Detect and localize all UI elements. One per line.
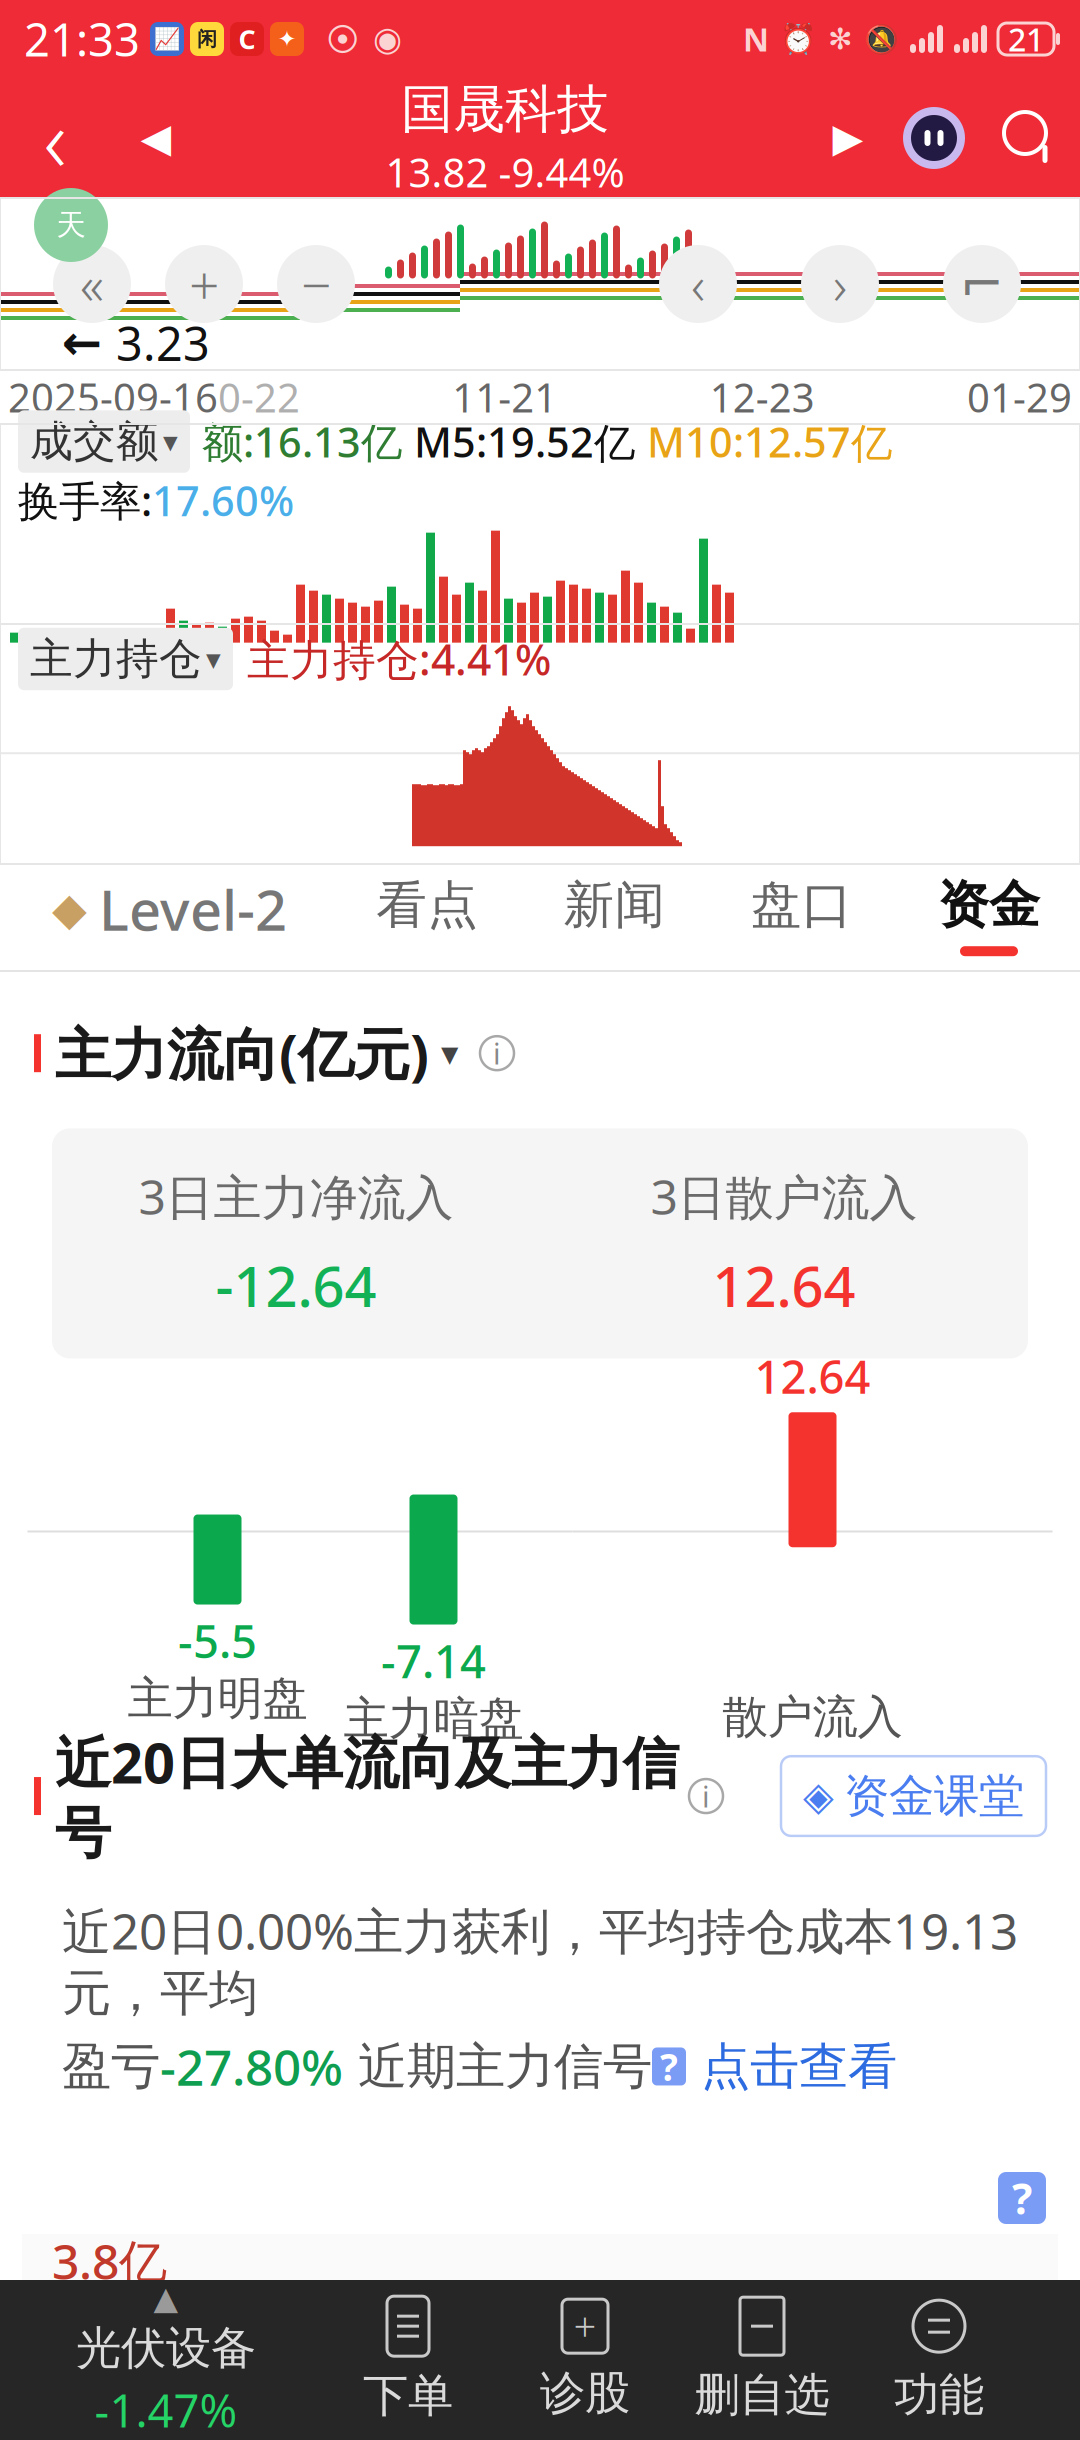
staticText: i [493,1034,501,1073]
staticText: − [301,249,331,319]
staticText: 新闻 [563,874,665,936]
button[interactable]: 说明 [679,1769,733,1823]
staticText: + [189,249,219,319]
staticText: -12.64 [215,1248,376,1322]
staticText: ? [660,2042,678,2091]
staticText: ← [62,316,102,370]
staticText: 12.64 [712,1248,855,1322]
staticText: ◆ [52,883,87,935]
button[interactable]: 下单 [333,2285,483,2435]
button[interactable]: 图表控制 [36,228,148,340]
staticText: ⏰ [780,22,817,56]
staticText: 3.23 [116,312,210,374]
button[interactable]: 图表控制 [642,228,754,340]
button[interactable]: 图表控制 [260,228,372,340]
staticText: ‹ [43,80,66,196]
staticText: ▾ [441,1033,458,1073]
staticText: ‹ [691,249,705,319]
button[interactable]: ▲ [26,2280,306,2440]
staticText: 近20日大单流向及主力信号 [55,1724,679,1868]
staticText: ▶ [832,115,863,161]
staticText: -27.80% [160,2034,343,2099]
staticText: ⌐ [959,254,1004,314]
staticText: ⦿ [326,23,359,55]
button[interactable]: 智能助手 [888,78,980,198]
button[interactable]: 返回 [0,78,110,198]
staticText: 11-21 [452,370,557,423]
button[interactable]: 下一只股票 [808,78,888,198]
staticText: + [573,2300,596,2353]
staticText: ✻ [828,22,853,56]
button[interactable]: 说明 [470,1026,524,1080]
staticText: 删自选 [694,2367,829,2423]
staticText: C [238,21,255,57]
staticText: 光伏设备 [76,2320,256,2376]
staticText: 12.64 [754,1346,870,1406]
button[interactable]: ◆ [38,872,301,962]
button[interactable]: 点击查看 [686,2036,897,2097]
button[interactable]: ◈ [781,1756,1046,1836]
button[interactable]: 切换指标 [429,1025,470,1081]
staticText: 盈亏 [62,2036,160,2097]
staticText: 📈 [153,27,180,51]
staticText: 点击查看 [686,2036,897,2097]
staticText: ◉ [373,20,402,58]
button[interactable]: 图表控制 [784,228,896,340]
button[interactable]: 看点 [366,874,488,962]
staticText: M5:19.52亿 [414,414,635,469]
button[interactable]: 盘口 [741,874,863,962]
staticText: « [80,249,104,319]
staticText: ✦ [277,26,296,52]
staticText: 3.8亿 [52,2229,167,2293]
button[interactable]: 信号说明 [652,2047,686,2085]
staticText: 国晟科技 [401,77,609,141]
staticText: 2025-09-16 [8,370,218,423]
staticText: 功能 [894,2367,984,2423]
button[interactable]: 资金 [928,874,1050,962]
staticText: 天 [56,207,85,243]
button[interactable]: 图表控制 [148,228,260,340]
staticText: 看点 [376,874,478,936]
button[interactable]: + [510,2285,660,2435]
button[interactable]: 帮助 [998,2172,1046,2224]
staticText: 主力暗盘 [343,1691,523,1746]
staticText: 主力持仓 [30,633,202,685]
staticText: 3日主力净流入 [138,1164,453,1228]
staticText: 主力明盘 [127,1671,307,1726]
staticText: 盘口 [751,874,853,936]
button[interactable]: 新闻 [553,874,675,962]
button[interactable]: 搜索 [980,78,1080,198]
staticText: 3日散户流入 [650,1164,917,1228]
staticText: -1.47% [94,2380,237,2440]
staticText: 额:16.13亿 [202,414,402,469]
staticText: 0-22 [218,370,300,423]
staticText: -7.14 [381,1630,486,1691]
staticText: ▾ [163,425,178,458]
staticText: i [702,1777,710,1816]
staticText: N [743,18,769,60]
staticText: ◈ [803,1773,834,1819]
staticText: 近20日0.00%主力获利，平均持仓成本19.13元，平均 [62,1898,1018,2024]
button[interactable]: 主力持仓 [18,628,233,690]
staticText: 资金课堂 [844,1768,1024,1824]
staticText: 13.82 -9.44% [385,145,624,198]
button[interactable]: 图表控制 [926,228,1038,340]
staticText: 🔕 [864,23,899,55]
button[interactable]: 删自选 [687,2285,837,2435]
staticText: 下单 [363,2368,453,2424]
button[interactable]: 上一只股票 [110,78,202,198]
staticText: -5.5 [178,1610,257,1671]
staticText: 21 [1008,18,1044,60]
staticText: ? [1012,2170,1032,2226]
staticText: 换手率: [18,473,152,528]
button[interactable]: 功能 [864,2285,1014,2435]
staticText: 资金 [938,874,1040,936]
staticText: 01-29 [967,370,1072,423]
staticText: 主力持仓:4.41% [247,631,551,687]
staticText: ◀ [140,115,171,161]
staticText: ▲ [153,2280,178,2316]
staticText: 17.60% [152,473,294,528]
staticText: Level-2 [99,872,287,946]
staticText: 闲 [197,27,217,51]
button[interactable]: 成交额 [18,410,190,473]
